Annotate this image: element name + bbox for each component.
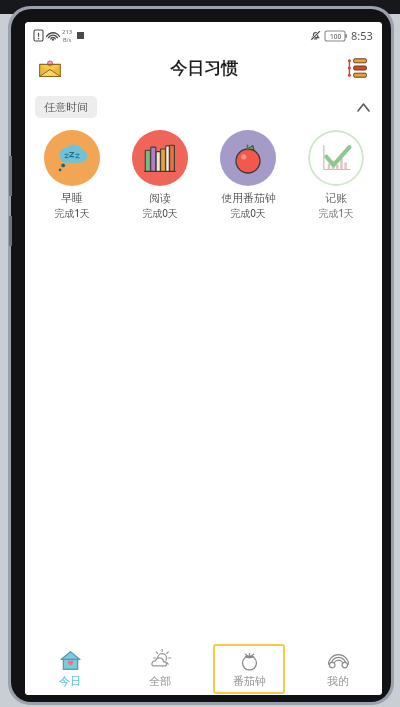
button[interactable]: 使用番茄钟 [204,128,292,222]
staticText: 全部 [149,674,171,688]
button[interactable]: 今日 [53,646,87,692]
button[interactable]: 记账 [292,128,380,222]
staticText: 今日习惯 [170,58,238,79]
staticText: 213 [62,28,73,36]
staticText: 100 [330,32,342,41]
staticText: B/s [63,36,72,43]
staticText: 记账 [325,191,347,205]
staticText: 我的 [327,674,349,688]
button[interactable]: 早睡 [27,128,116,222]
staticText: 完成0天 [230,206,266,220]
staticText: 番茄钟 [233,674,266,688]
staticText: 完成0天 [142,206,178,220]
staticText: 今日 [59,674,81,688]
button[interactable]: 我的 [321,646,355,692]
other: Collapse [350,94,376,120]
staticText: 8:53 [351,28,373,43]
staticText: 阅读 [149,191,171,205]
button[interactable]: Messages [33,51,67,85]
staticText: 完成1天 [54,206,90,220]
button[interactable]: 任意时间 [25,94,382,120]
button[interactable]: 阅读 [116,128,204,222]
staticText: 使用番茄钟 [221,191,276,205]
staticText: 任意时间 [44,100,88,114]
button[interactable]: 全部 [143,646,177,692]
staticText: 完成1天 [318,206,354,220]
button[interactable]: Sort habits [340,51,374,85]
staticText: 早睡 [61,191,83,205]
button[interactable]: 番茄钟 [213,644,285,694]
